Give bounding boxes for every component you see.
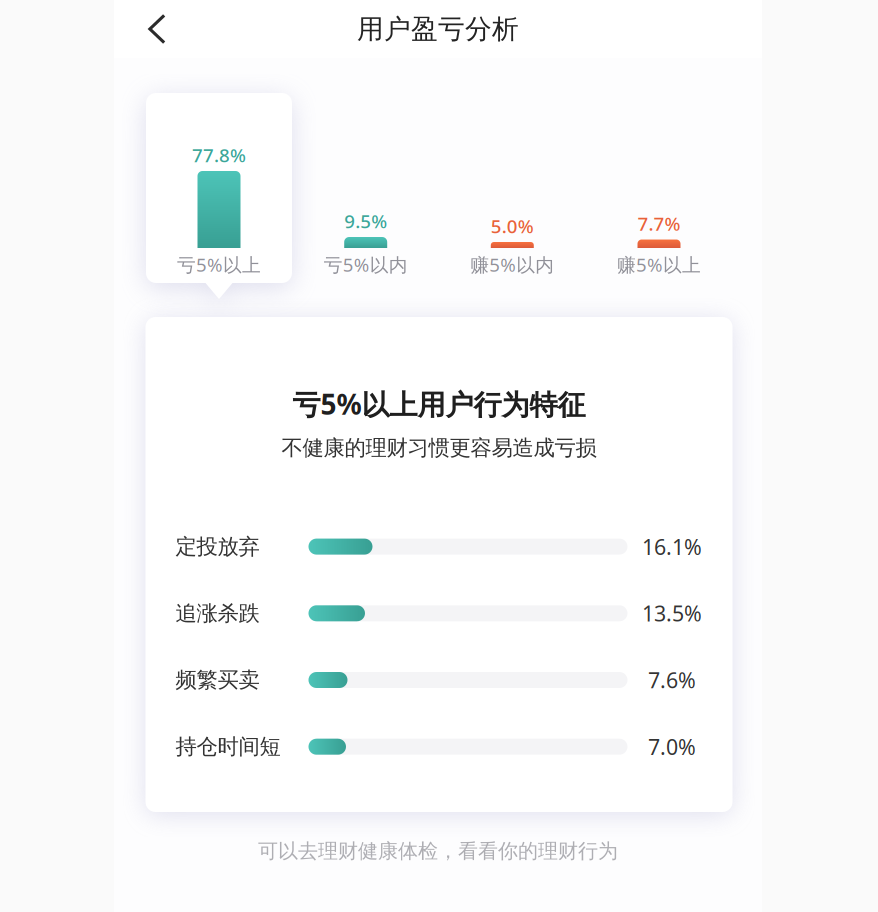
- staticText: 16.1%: [642, 532, 702, 561]
- staticText: 用户盈亏分析: [357, 13, 519, 45]
- staticText: 定投放弃: [175, 533, 259, 560]
- staticText: 不健康的理财习惯更容易造成亏损: [281, 435, 596, 461]
- staticText: 赚5%以上: [617, 252, 701, 277]
- staticText: 77.8%: [192, 143, 246, 167]
- staticText: 亏5%以内: [324, 252, 408, 277]
- staticText: 追涨杀跌: [175, 600, 259, 626]
- staticText: 亏5%以上: [177, 252, 261, 277]
- button[interactable]: 返回: [128, 0, 186, 58]
- staticText: 亏5%以上用户行为特征: [292, 385, 585, 423]
- staticText: 9.5%: [344, 209, 387, 233]
- staticText: 13.5%: [642, 599, 702, 627]
- staticText: 7.0%: [648, 732, 696, 761]
- staticText: 赚5%以内: [470, 252, 554, 277]
- staticText: 持仓时间短: [175, 734, 280, 760]
- staticText: 频繁买卖: [175, 667, 259, 693]
- staticText: 7.7%: [637, 211, 680, 236]
- staticText: 7.6%: [648, 666, 696, 694]
- staticText: 可以去理财健康体检，看看你的理财行为: [258, 839, 618, 863]
- staticText: 5.0%: [491, 214, 534, 238]
